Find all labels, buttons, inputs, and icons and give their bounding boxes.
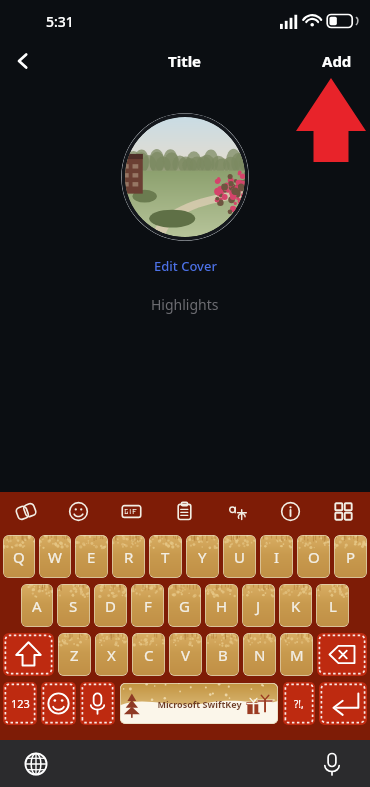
staticText: N [254,645,266,665]
button[interactable]: Add [316,47,358,75]
button[interactable]: U [223,535,256,578]
button[interactable]: 123 [3,682,37,725]
staticText: Y [198,547,207,567]
staticText: X [107,645,116,665]
staticText: O [308,547,320,567]
button[interactable]: Info [264,492,317,530]
button[interactable]: X [95,633,128,676]
button[interactable]: Y [186,535,219,578]
button[interactable]: S [57,584,90,627]
staticText: Highlights [151,295,219,314]
staticText: E [87,547,96,567]
button[interactable]: D [94,584,127,627]
button[interactable]: R [112,535,145,578]
button[interactable]: Space [120,683,278,724]
button[interactable]: Voice input [312,744,352,784]
button[interactable]: GIF [105,492,158,530]
button[interactable]: B [206,633,239,676]
staticText: S [69,596,78,616]
button[interactable]: F [131,584,164,627]
staticText: 5:31 [46,12,74,31]
staticText: U [234,547,245,567]
staticText: M [290,645,304,665]
button[interactable]: Q [3,535,35,578]
button[interactable]: M [280,633,313,676]
button[interactable]: Change language [16,744,56,784]
button[interactable]: N [243,633,276,676]
staticText: Add [322,51,352,71]
button[interactable]: I [260,535,293,578]
staticText: C [144,645,154,665]
button[interactable]: Emoji [41,682,76,725]
staticText: 123 [11,696,30,711]
staticText: Edit Cover [154,257,217,275]
staticText: ?!, [294,697,304,711]
button[interactable]: V [169,633,202,676]
button[interactable]: Clipboard [158,492,211,530]
button[interactable]: W [39,535,71,578]
button[interactable]: C [132,633,165,676]
staticText: B [218,645,228,665]
button[interactable]: Enter [319,682,367,725]
staticText: Microsoft SwiftKey [157,698,242,710]
staticText: R [124,547,134,567]
button[interactable]: Emoji [52,492,105,530]
button[interactable]: J [242,584,275,627]
staticText: J [256,596,261,616]
staticText: Title [168,51,202,71]
button[interactable]: SwiftKey [0,492,52,530]
staticText: P [346,547,356,567]
staticText: V [181,645,191,665]
button[interactable]: E [75,535,108,578]
staticText: A [32,596,42,616]
staticText: Q [13,547,25,567]
button[interactable]: H [205,584,238,627]
button[interactable]: A [21,584,53,627]
staticText: W [48,547,62,567]
button[interactable]: T [149,535,182,578]
staticText: G [179,596,190,616]
staticText: T [161,547,170,567]
button[interactable]: Edit Cover [146,254,225,278]
staticText: Z [70,645,79,665]
button[interactable]: K [279,584,312,627]
button[interactable]: G [168,584,201,627]
staticText: D [105,596,116,616]
staticText: I [274,547,280,567]
button[interactable]: P [334,535,367,578]
button[interactable]: Back [0,42,46,80]
staticText: F [144,596,152,616]
staticText: L [329,596,337,616]
button[interactable]: Shift [3,633,54,676]
staticText: K [291,596,301,616]
button[interactable]: Backspace [317,633,367,676]
button[interactable]: Voice input [80,682,115,725]
button[interactable]: ?!, [283,682,315,725]
button[interactable]: L [316,584,349,627]
staticText: H [216,596,228,616]
button[interactable]: O [297,535,330,578]
button[interactable]: Z [58,633,91,676]
button[interactable]: Menu [317,492,370,530]
button[interactable] [121,113,249,241]
button[interactable]: Languages [211,492,264,530]
